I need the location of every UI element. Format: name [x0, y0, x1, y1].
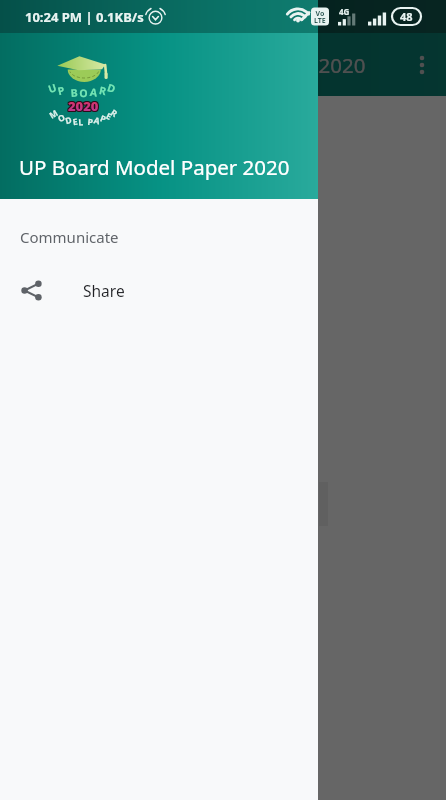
staticText: UP Board Model Paper 2020 — [95, 51, 366, 79]
staticText: Communicate — [20, 227, 119, 247]
button[interactable]: Share — [0, 266, 318, 314]
staticText: Share — [83, 280, 125, 301]
button[interactable]: More options — [398, 33, 446, 96]
staticText: 10:24 PM | 0.1KB/s — [25, 8, 144, 26]
staticText: UP Board Model Paper 2020 — [19, 153, 290, 181]
